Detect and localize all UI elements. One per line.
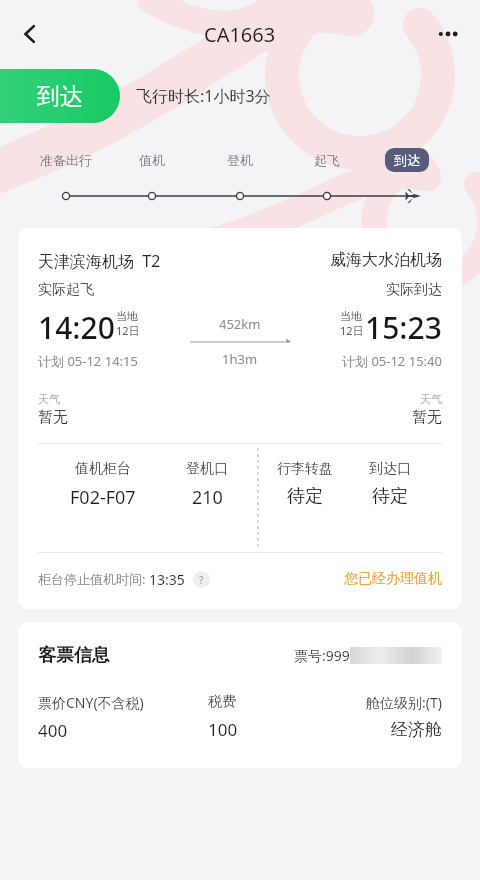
staticText: 到达口 bbox=[369, 460, 411, 478]
button[interactable]: 客票信息 bbox=[18, 622, 462, 768]
staticText: 到达 bbox=[394, 152, 420, 168]
staticText: 12日 bbox=[340, 323, 364, 338]
staticText: 当地 bbox=[116, 309, 138, 323]
staticText: 舱位级别:(T) bbox=[366, 693, 442, 712]
button[interactable]: Back bbox=[6, 10, 54, 58]
staticText: 15:23 bbox=[365, 307, 442, 348]
staticText: ? bbox=[199, 573, 204, 587]
staticText: 税费 bbox=[208, 693, 236, 711]
staticText: 400 bbox=[38, 719, 68, 742]
staticText: 威海大水泊机场 bbox=[330, 250, 442, 270]
staticText: 值机柜台 bbox=[75, 460, 131, 478]
staticText: 实际起飞 bbox=[38, 281, 94, 299]
staticText: 经济舱 bbox=[391, 719, 442, 740]
staticText: 柜台停止值机时间: bbox=[38, 570, 149, 588]
staticText: 计划 05-12 14:15 bbox=[38, 352, 138, 370]
staticText: 210 bbox=[192, 485, 223, 510]
button[interactable]: Help bbox=[193, 571, 210, 588]
staticText: 1h3m bbox=[222, 350, 258, 368]
staticText: 行李转盘 bbox=[277, 460, 333, 478]
button[interactable]: 准备出行 bbox=[18, 152, 114, 168]
button[interactable]: 值机 bbox=[104, 152, 200, 168]
button[interactable]: 您已经办理值机 bbox=[344, 570, 442, 588]
staticText: 值机 bbox=[139, 152, 165, 168]
staticText: 客票信息 bbox=[38, 644, 110, 667]
staticText: 100 bbox=[208, 718, 238, 741]
staticText: 飞行时长:1小时3分 bbox=[136, 85, 271, 107]
staticText: 天气 bbox=[420, 392, 442, 406]
staticText: 13:35 bbox=[149, 570, 185, 589]
button[interactable]: 天津滨海机场 T2 bbox=[18, 228, 462, 609]
staticText: 天津滨海机场 T2 bbox=[38, 250, 161, 272]
staticText: 起飞 bbox=[314, 152, 340, 168]
staticText: 待定 bbox=[287, 485, 323, 508]
staticText: 票号:999 bbox=[294, 646, 350, 665]
staticText: 14:20 bbox=[38, 307, 115, 348]
staticText: 票价CNY(不含税) bbox=[38, 693, 144, 712]
button[interactable]: More options bbox=[424, 10, 472, 58]
staticText: 准备出行 bbox=[40, 152, 92, 168]
button[interactable]: 起飞 bbox=[279, 152, 375, 168]
staticText: 当地 bbox=[340, 309, 362, 323]
staticText: 登机口 bbox=[186, 460, 228, 478]
button[interactable]: 到达 bbox=[0, 69, 120, 123]
staticText: F02-F07 bbox=[70, 485, 136, 510]
staticText: 待定 bbox=[372, 485, 408, 508]
button[interactable]: 登机 bbox=[192, 152, 288, 168]
staticText: 实际到达 bbox=[386, 281, 442, 299]
staticText: CA1663 bbox=[204, 21, 276, 48]
staticText: 暂无 bbox=[38, 408, 68, 427]
staticText: 452km bbox=[219, 315, 261, 333]
staticText: 天气 bbox=[38, 392, 60, 406]
staticText: 您已经办理值机 bbox=[344, 570, 442, 588]
staticText: 计划 05-12 15:40 bbox=[342, 352, 442, 370]
staticText: 12日 bbox=[116, 323, 140, 338]
button[interactable]: 到达 bbox=[385, 148, 429, 172]
staticText: 到达 bbox=[37, 82, 83, 111]
staticText: 暂无 bbox=[412, 408, 442, 427]
staticText: 登机 bbox=[227, 152, 253, 168]
